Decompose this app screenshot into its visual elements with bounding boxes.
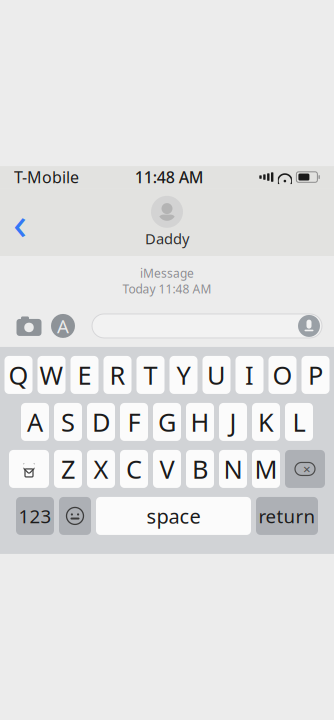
button[interactable]: B	[186, 450, 214, 488]
staticText: V	[159, 452, 174, 486]
staticText: return	[258, 503, 315, 528]
staticText: K	[258, 405, 274, 439]
staticText: iMessage	[140, 265, 194, 281]
staticText: J	[229, 405, 236, 439]
staticText: 11:48 AM	[135, 166, 204, 188]
staticText: Q	[8, 358, 28, 392]
staticText: T	[143, 358, 157, 392]
button[interactable]: Y	[169, 356, 197, 394]
staticText: I	[245, 358, 254, 392]
button[interactable]: L	[285, 403, 313, 441]
button[interactable]: T	[136, 356, 164, 394]
button[interactable]: N	[219, 450, 247, 488]
staticText: H	[190, 405, 209, 439]
staticText: space	[146, 503, 200, 529]
button[interactable]: return	[256, 497, 318, 535]
staticText: Today 11:48 AM	[122, 281, 211, 297]
button[interactable]: K	[252, 403, 280, 441]
button[interactable]: Back	[0, 200, 40, 244]
button[interactable]: V	[153, 450, 181, 488]
button[interactable]: D	[87, 403, 115, 441]
button[interactable]: U	[202, 356, 230, 394]
staticText: T-Mobile	[14, 166, 79, 188]
button[interactable]: G	[153, 403, 181, 441]
staticText: ×	[303, 460, 311, 478]
button[interactable]: O	[268, 356, 296, 394]
button[interactable]: X	[87, 450, 115, 488]
button[interactable]: J	[219, 403, 247, 441]
button[interactable]: Delete	[285, 450, 325, 488]
staticText: B	[192, 452, 208, 486]
staticText: P	[308, 358, 323, 392]
staticText: U	[207, 358, 226, 392]
button[interactable]: Camera	[12, 309, 46, 343]
button[interactable]: A	[21, 403, 49, 441]
button[interactable]: W	[37, 356, 65, 394]
button[interactable]: M	[252, 450, 280, 488]
staticText: G	[158, 405, 176, 439]
button[interactable]: C	[120, 450, 148, 488]
staticText: 123	[18, 503, 51, 528]
staticText: M	[254, 452, 277, 486]
staticText: A	[57, 313, 69, 338]
staticText: L	[292, 405, 305, 439]
staticText: X	[93, 452, 108, 486]
staticText: E	[77, 358, 91, 392]
button[interactable]: 123	[16, 497, 54, 535]
staticText: O	[272, 358, 292, 392]
staticText: ‹	[13, 192, 27, 252]
staticText: Z	[61, 452, 75, 486]
staticText: S	[61, 405, 75, 439]
staticText: C	[126, 452, 142, 486]
button[interactable]: F	[120, 403, 148, 441]
staticText: W	[39, 358, 63, 392]
staticText: Y	[176, 358, 190, 392]
button[interactable]: P	[301, 356, 329, 394]
staticText: D	[92, 405, 110, 439]
button[interactable]: R	[103, 356, 131, 394]
button[interactable]: H	[186, 403, 214, 441]
button[interactable]: E	[70, 356, 98, 394]
staticText: A	[27, 405, 43, 439]
button[interactable]: S	[54, 403, 82, 441]
button[interactable]	[92, 314, 322, 338]
button[interactable]: Q	[4, 356, 32, 394]
staticText: Daddy	[145, 229, 189, 248]
button[interactable]: App Store	[46, 309, 80, 343]
button[interactable]: I	[235, 356, 263, 394]
button[interactable]: space	[96, 497, 251, 535]
button[interactable]: Emoji	[59, 497, 91, 535]
staticText: F	[127, 405, 140, 439]
button[interactable]: Shift	[9, 450, 49, 488]
staticText: R	[109, 358, 125, 392]
staticText: N	[223, 452, 242, 486]
button[interactable]: Z	[54, 450, 82, 488]
